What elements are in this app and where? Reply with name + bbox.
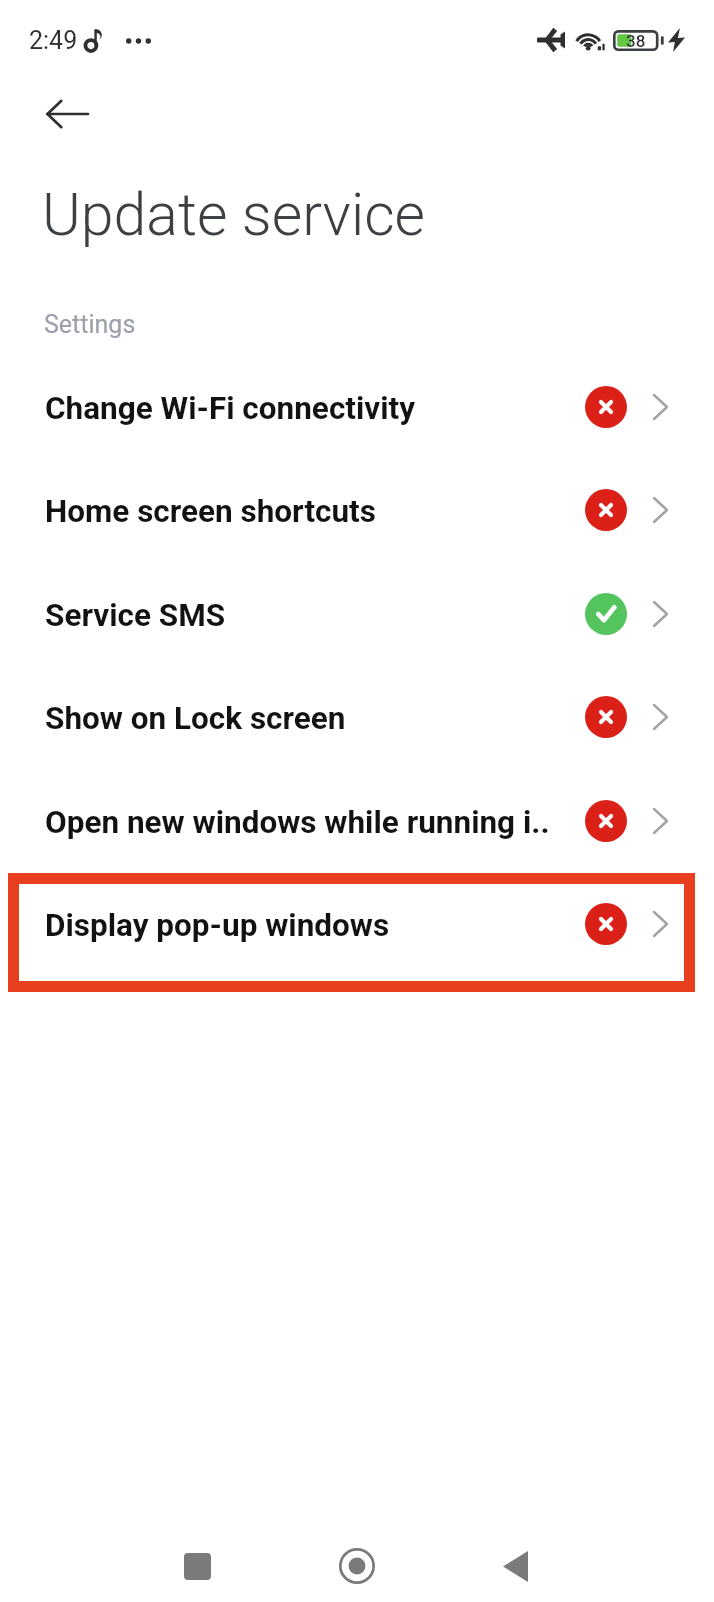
staticText: Change Wi-Fi connectivity	[45, 390, 416, 427]
staticText: Home screen shortcuts	[45, 493, 376, 530]
button[interactable]: Display pop-up windows	[0, 878, 714, 970]
button[interactable]: Service SMS	[0, 568, 714, 660]
staticText: Display pop-up windows	[45, 907, 390, 944]
button[interactable]: Recent apps	[167, 1536, 227, 1596]
button[interactable]: Change Wi-Fi connectivity	[0, 361, 714, 453]
button[interactable]: Show on Lock screen	[0, 671, 714, 763]
staticText: Show on Lock screen	[45, 700, 346, 737]
staticText: Service SMS	[45, 597, 226, 634]
button[interactable]: Back	[485, 1536, 545, 1596]
staticText: 2:49	[29, 26, 78, 55]
button[interactable]: Home screen shortcuts	[0, 464, 714, 556]
button[interactable]: Home	[327, 1536, 387, 1596]
staticText: Settings	[44, 310, 136, 339]
button[interactable]: Open new windows while running i..	[0, 775, 714, 867]
staticText: 38	[626, 31, 646, 51]
staticText: Open new windows while running i..	[45, 804, 550, 841]
button[interactable]: Back	[41, 88, 93, 140]
staticText: Update service	[42, 180, 426, 249]
